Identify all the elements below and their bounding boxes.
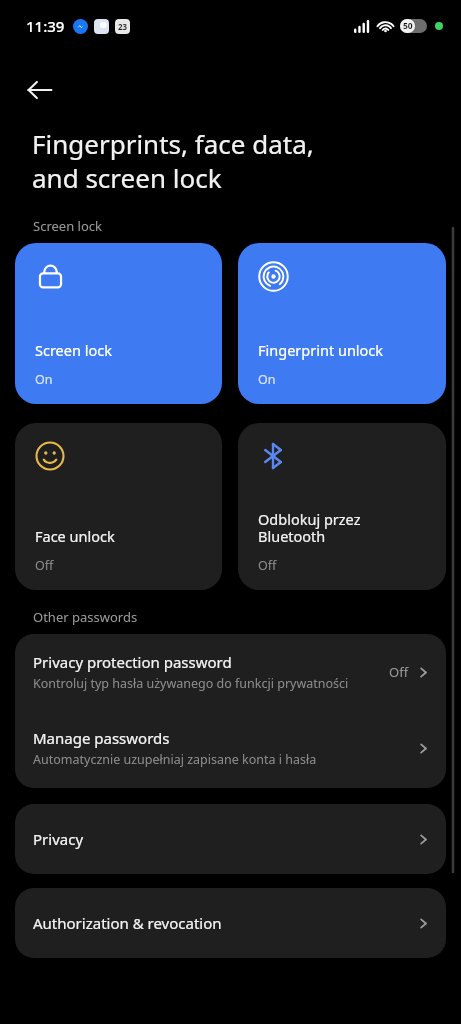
button[interactable]: Screen lock (15, 243, 222, 404)
staticText: On (35, 371, 53, 388)
staticText: On (258, 371, 276, 388)
staticText: Authorization & revocation (33, 913, 415, 933)
staticText: Automatycznie uzupełniaj zapisane konta … (33, 751, 317, 768)
staticText: Privacy (33, 829, 415, 849)
staticText: Fingerprint unlock (258, 340, 384, 360)
staticText: Privacy protection password (33, 652, 232, 672)
button[interactable]: Back (16, 66, 64, 114)
button[interactable]: Fingerprint unlock (238, 243, 446, 404)
staticText: 50 (403, 20, 413, 32)
button[interactable]: Privacy (15, 804, 446, 874)
staticText: Face unlock (35, 526, 115, 546)
staticText: Kontroluj typ hasła używanego do funkcji… (33, 675, 349, 692)
staticText: 23 (118, 21, 128, 32)
staticText: Odblokuj przez Bluetooth (258, 509, 361, 546)
staticText: Screen lock (33, 217, 102, 235)
button[interactable]: Authorization & revocation (15, 888, 446, 958)
staticText: Off (258, 557, 277, 574)
staticText: 11:39 (26, 16, 65, 36)
button[interactable]: Odblokuj przez Bluetooth (238, 423, 446, 590)
staticText: Fingerprints, face data, and screen lock (32, 126, 314, 195)
staticText: Off (389, 663, 409, 681)
staticText: Off (35, 557, 54, 574)
button[interactable]: Privacy protection password (15, 634, 446, 706)
staticText: Screen lock (35, 340, 112, 360)
button[interactable]: Face unlock (15, 423, 222, 590)
button[interactable]: Manage passwords (15, 728, 446, 788)
staticText: Manage passwords (33, 728, 170, 748)
staticText: Other passwords (33, 608, 138, 626)
